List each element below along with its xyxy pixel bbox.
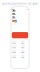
staticText: Value	[12, 47, 16, 49]
staticText: Edit	[26, 9, 28, 10]
staticText: Label	[20, 54, 24, 56]
staticText: Value	[12, 42, 16, 44]
staticText: Label	[20, 40, 24, 42]
staticText: Label	[12, 50, 16, 51]
staticText: Label	[12, 54, 16, 56]
staticText: Lorem ipsum dolor sit amet	[1, 2, 38, 5]
staticText: Label	[20, 50, 24, 51]
staticText: Label	[20, 45, 24, 47]
staticText: Value	[20, 42, 24, 44]
staticText: Value	[20, 56, 24, 58]
staticText: Summary	[12, 9, 17, 23]
staticText: Value	[12, 56, 16, 58]
staticText: Value	[20, 52, 24, 53]
staticText: Value	[20, 47, 24, 49]
staticText: Label	[12, 40, 16, 42]
staticText: Value	[12, 52, 16, 53]
